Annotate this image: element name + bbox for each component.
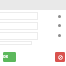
button[interactable]: Phone field xyxy=(0,32,38,40)
button[interactable]: OK xyxy=(3,52,16,62)
button[interactable]: Open picker xyxy=(56,22,63,29)
button[interactable]: Open picker xyxy=(56,13,63,20)
button[interactable]: Email field xyxy=(0,22,38,30)
button[interactable]: Cancel xyxy=(55,52,65,62)
button[interactable]: Name field xyxy=(0,12,38,20)
button[interactable]: Open picker xyxy=(56,32,63,39)
staticText: OK xyxy=(3,54,8,59)
button[interactable]: Notes field xyxy=(0,41,32,45)
